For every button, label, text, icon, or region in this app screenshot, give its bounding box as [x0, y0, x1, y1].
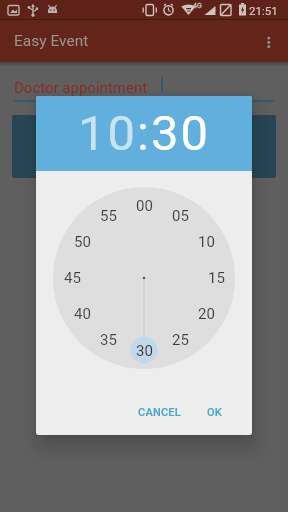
staticText: 10 — [198, 233, 215, 251]
button[interactable]: CANCEL — [127, 394, 191, 430]
staticText: 35 — [100, 331, 117, 349]
staticText: 15 — [208, 269, 225, 287]
button[interactable]: OK — [191, 394, 238, 430]
staticText: Easy Event — [14, 32, 89, 50]
button[interactable] — [12, 115, 276, 178]
staticText: CANCEL — [138, 406, 181, 419]
staticText: OK — [207, 406, 222, 419]
staticText: 05 — [172, 207, 189, 225]
button[interactable] — [250, 20, 288, 62]
staticText: 45 — [64, 269, 81, 287]
staticText: 00 — [136, 197, 153, 215]
staticText: 50 — [74, 233, 91, 251]
staticText: 30 — [136, 342, 153, 360]
button[interactable]: 30 — [131, 337, 158, 364]
button[interactable] — [8, 70, 280, 102]
staticText: 10:30 — [78, 105, 211, 162]
staticText: 25 — [172, 331, 189, 349]
staticText: Doctor appointment — [14, 79, 148, 97]
staticText: 4G — [193, 2, 202, 10]
staticText: 40 — [74, 305, 91, 323]
staticText: 55 — [100, 207, 117, 225]
staticText: 21:51 — [249, 4, 278, 17]
staticText: 20 — [198, 305, 215, 323]
